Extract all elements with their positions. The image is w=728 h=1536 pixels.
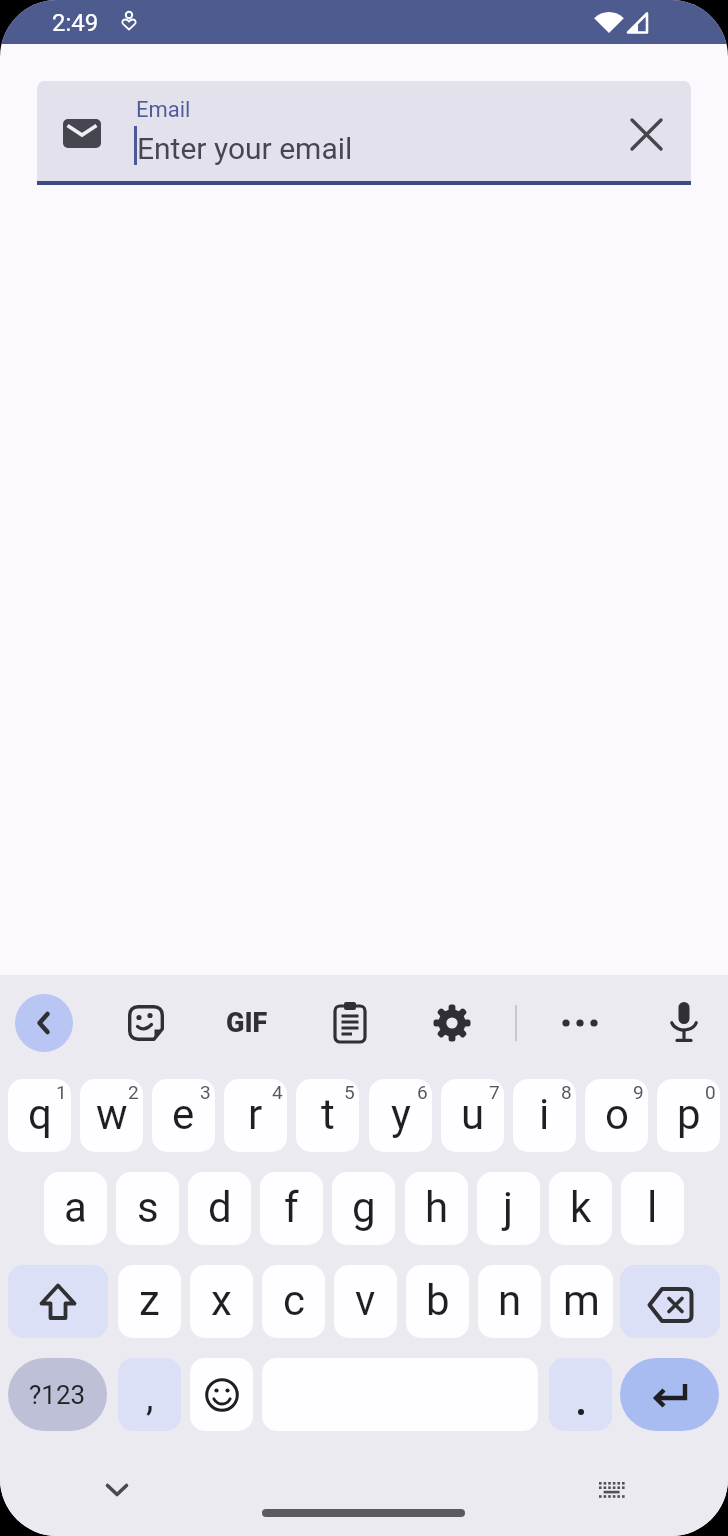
button[interactable]: r: [224, 1079, 287, 1152]
button[interactable]: b: [406, 1265, 469, 1338]
button[interactable]: n: [478, 1265, 541, 1338]
staticText: g: [352, 1183, 376, 1232]
button[interactable]: GIF: [219, 1003, 275, 1043]
staticText: e: [172, 1090, 195, 1139]
staticText: c: [283, 1276, 305, 1325]
button[interactable]: [93, 1466, 141, 1514]
staticText: w: [96, 1090, 128, 1139]
button[interactable]: e: [152, 1079, 215, 1152]
button[interactable]: q: [8, 1079, 71, 1152]
staticText: u: [461, 1090, 485, 1139]
button[interactable]: j: [477, 1172, 540, 1245]
button[interactable]: u: [441, 1079, 504, 1152]
button[interactable]: ,: [118, 1358, 181, 1431]
staticText: 6: [417, 1081, 428, 1103]
button[interactable]: k: [549, 1172, 612, 1245]
staticText: x: [211, 1276, 232, 1325]
staticText: 2:49: [52, 9, 99, 37]
button[interactable]: o: [585, 1079, 648, 1152]
staticText: GIF: [226, 1007, 268, 1039]
button[interactable]: [552, 999, 608, 1047]
button[interactable]: [620, 1265, 720, 1338]
staticText: r: [248, 1090, 263, 1139]
button[interactable]: [620, 1358, 719, 1431]
staticText: m: [563, 1276, 600, 1325]
button[interactable]: p: [657, 1079, 720, 1152]
staticText: j: [503, 1183, 514, 1232]
button[interactable]: [588, 1466, 636, 1514]
staticText: ?123: [29, 1380, 86, 1410]
staticText: 4: [272, 1081, 283, 1103]
button[interactable]: [624, 112, 668, 156]
staticText: 0: [705, 1081, 716, 1103]
staticText: b: [426, 1276, 450, 1325]
button[interactable]: y: [369, 1079, 432, 1152]
button[interactable]: [549, 1358, 612, 1431]
staticText: p: [677, 1090, 701, 1139]
button[interactable]: f: [260, 1172, 323, 1245]
staticText: k: [570, 1183, 592, 1232]
staticText: s: [137, 1183, 159, 1232]
button[interactable]: d: [188, 1172, 251, 1245]
staticText: l: [647, 1183, 658, 1232]
button[interactable]: v: [334, 1265, 397, 1338]
staticText: 1: [56, 1081, 67, 1103]
staticText: h: [425, 1183, 449, 1232]
staticText: z: [139, 1276, 160, 1325]
staticText: f: [284, 1183, 299, 1232]
staticText: Enter your email: [137, 131, 353, 166]
staticText: n: [498, 1276, 522, 1325]
staticText: 9: [633, 1081, 644, 1103]
staticText: 2: [128, 1081, 139, 1103]
staticText: 3: [200, 1081, 211, 1103]
staticText: q: [28, 1090, 52, 1139]
staticText: v: [355, 1276, 376, 1325]
staticText: Email: [136, 97, 191, 123]
button[interactable]: [326, 999, 374, 1047]
button[interactable]: [428, 999, 476, 1047]
button[interactable]: [15, 994, 73, 1052]
button[interactable]: Email: [37, 81, 691, 185]
button[interactable]: [122, 999, 170, 1047]
staticText: d: [208, 1183, 232, 1232]
staticText: y: [391, 1090, 411, 1139]
staticText: ,: [146, 1375, 154, 1420]
button[interactable]: g: [332, 1172, 395, 1245]
staticText: 8: [561, 1081, 572, 1103]
button[interactable]: s: [116, 1172, 179, 1245]
staticText: o: [605, 1090, 629, 1139]
staticText: i: [539, 1090, 550, 1139]
button[interactable]: w: [80, 1079, 143, 1152]
staticText: 7: [489, 1081, 500, 1103]
button[interactable]: [8, 1265, 108, 1338]
button[interactable]: z: [118, 1265, 181, 1338]
button[interactable]: x: [190, 1265, 253, 1338]
staticText: 5: [344, 1081, 355, 1103]
button[interactable]: l: [621, 1172, 684, 1245]
button[interactable]: [190, 1358, 253, 1431]
button[interactable]: i: [513, 1079, 576, 1152]
staticText: t: [321, 1090, 335, 1139]
button[interactable]: a: [44, 1172, 107, 1245]
button[interactable]: h: [405, 1172, 468, 1245]
button[interactable]: m: [550, 1265, 613, 1338]
staticText: a: [64, 1183, 87, 1232]
button[interactable]: t: [296, 1079, 359, 1152]
button[interactable]: c: [262, 1265, 325, 1338]
button[interactable]: [660, 999, 708, 1047]
button[interactable]: ?123: [8, 1358, 107, 1431]
